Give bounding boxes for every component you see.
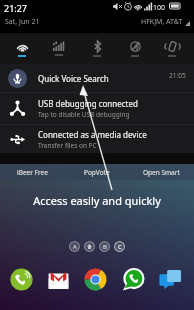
button[interactable]: Messages	[158, 267, 182, 291]
staticText: 21:27	[4, 2, 28, 14]
button[interactable]	[6, 33, 38, 64]
button[interactable]: Chrome	[84, 268, 107, 291]
button[interactable]: Connected as a media device	[0, 125, 194, 153]
button[interactable]: Phone	[10, 268, 33, 291]
staticText: HFKJM, AT&T	[141, 17, 183, 27]
button[interactable]: Quick Voice Search	[0, 64, 194, 92]
staticText: Open Smart	[143, 168, 180, 177]
staticText: USB debugging connected	[38, 98, 138, 109]
button[interactable]	[84, 241, 95, 252]
staticText: C	[118, 243, 122, 251]
button[interactable]	[156, 33, 188, 64]
staticText: Tap to disable USB debugging	[38, 110, 130, 119]
button[interactable]: Gmail	[47, 268, 70, 291]
button[interactable]	[43, 33, 75, 64]
button[interactable]: C	[114, 241, 125, 252]
staticText: Transfer files on PC	[38, 141, 97, 150]
button[interactable]: USB debugging connected	[0, 93, 194, 124]
staticText: PopVote	[84, 168, 110, 177]
staticText: 21:05	[169, 71, 186, 80]
button[interactable]: Open Smart	[129, 168, 194, 177]
button[interactable]: WhatsApp	[122, 268, 145, 291]
button[interactable]	[81, 33, 113, 64]
button[interactable]: PopVote	[64, 168, 129, 177]
button[interactable]: A	[69, 241, 80, 252]
button[interactable]	[119, 33, 151, 64]
staticText: iBeer Free	[17, 168, 48, 177]
staticText: A	[73, 243, 77, 251]
button[interactable]: iBeer Free	[0, 168, 64, 177]
staticText: Quick Voice Search	[38, 73, 109, 84]
staticText: Access easily and quickly	[0, 193, 194, 208]
staticText: Sat, Jun 21	[5, 17, 40, 27]
staticText: B	[103, 243, 107, 251]
button[interactable]: B	[99, 241, 110, 252]
staticText: 100	[153, 3, 166, 13]
staticText: Connected as a media device	[38, 129, 147, 140]
